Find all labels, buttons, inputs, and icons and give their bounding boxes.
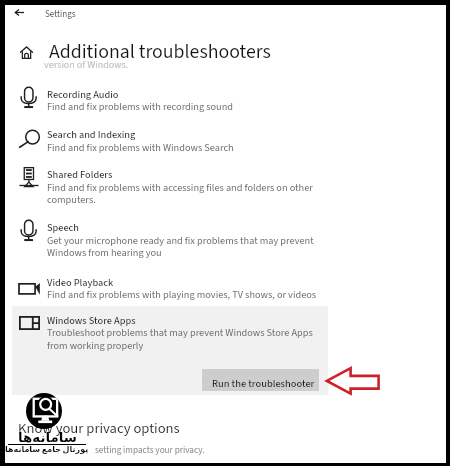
button[interactable] [12,219,328,261]
button[interactable]: Run the troubleshooter [202,369,319,391]
button[interactable] [12,85,328,114]
staticText: Run the troubleshooter [212,376,315,391]
staticText: Get your microphone ready and fix proble… [47,233,314,248]
button[interactable] [12,126,328,155]
staticText: from working properly [47,338,144,353]
staticText: Shared Folders [47,167,113,182]
button[interactable] [12,166,328,208]
staticText: Troubleshoot problems that may prevent W… [47,325,313,340]
staticText: Find and fix problems with recording sou… [47,99,234,114]
staticText: Windows from hearing you [47,245,162,260]
staticText: پورتال جامع سامانه‌ها [5,444,89,455]
staticText: Find and fix problems with playing movie… [47,287,317,302]
staticText: Windows Store Apps [47,313,136,328]
button[interactable] [12,273,328,302]
staticText: computers. [47,192,96,207]
staticText: Recording Audio [47,87,119,102]
staticText: Settings [45,8,76,21]
staticText: Find and fix problems with Windows Searc… [47,140,234,155]
staticText: Additional troubleshooters [49,38,271,66]
staticText: Know your privacy options [18,418,180,439]
staticText: سامانه‌ها [18,430,77,446]
button[interactable] [12,306,328,395]
staticText: Video Playback [47,275,114,290]
staticText: Search and Indexing [47,127,136,142]
staticText: setting impacts your privacy. [95,444,205,457]
button[interactable]: Back [9,3,31,22]
staticText: Speech [47,220,80,235]
staticText: version of Windows. [44,58,129,72]
staticText: Find and fix problems with accessing fil… [47,180,313,195]
